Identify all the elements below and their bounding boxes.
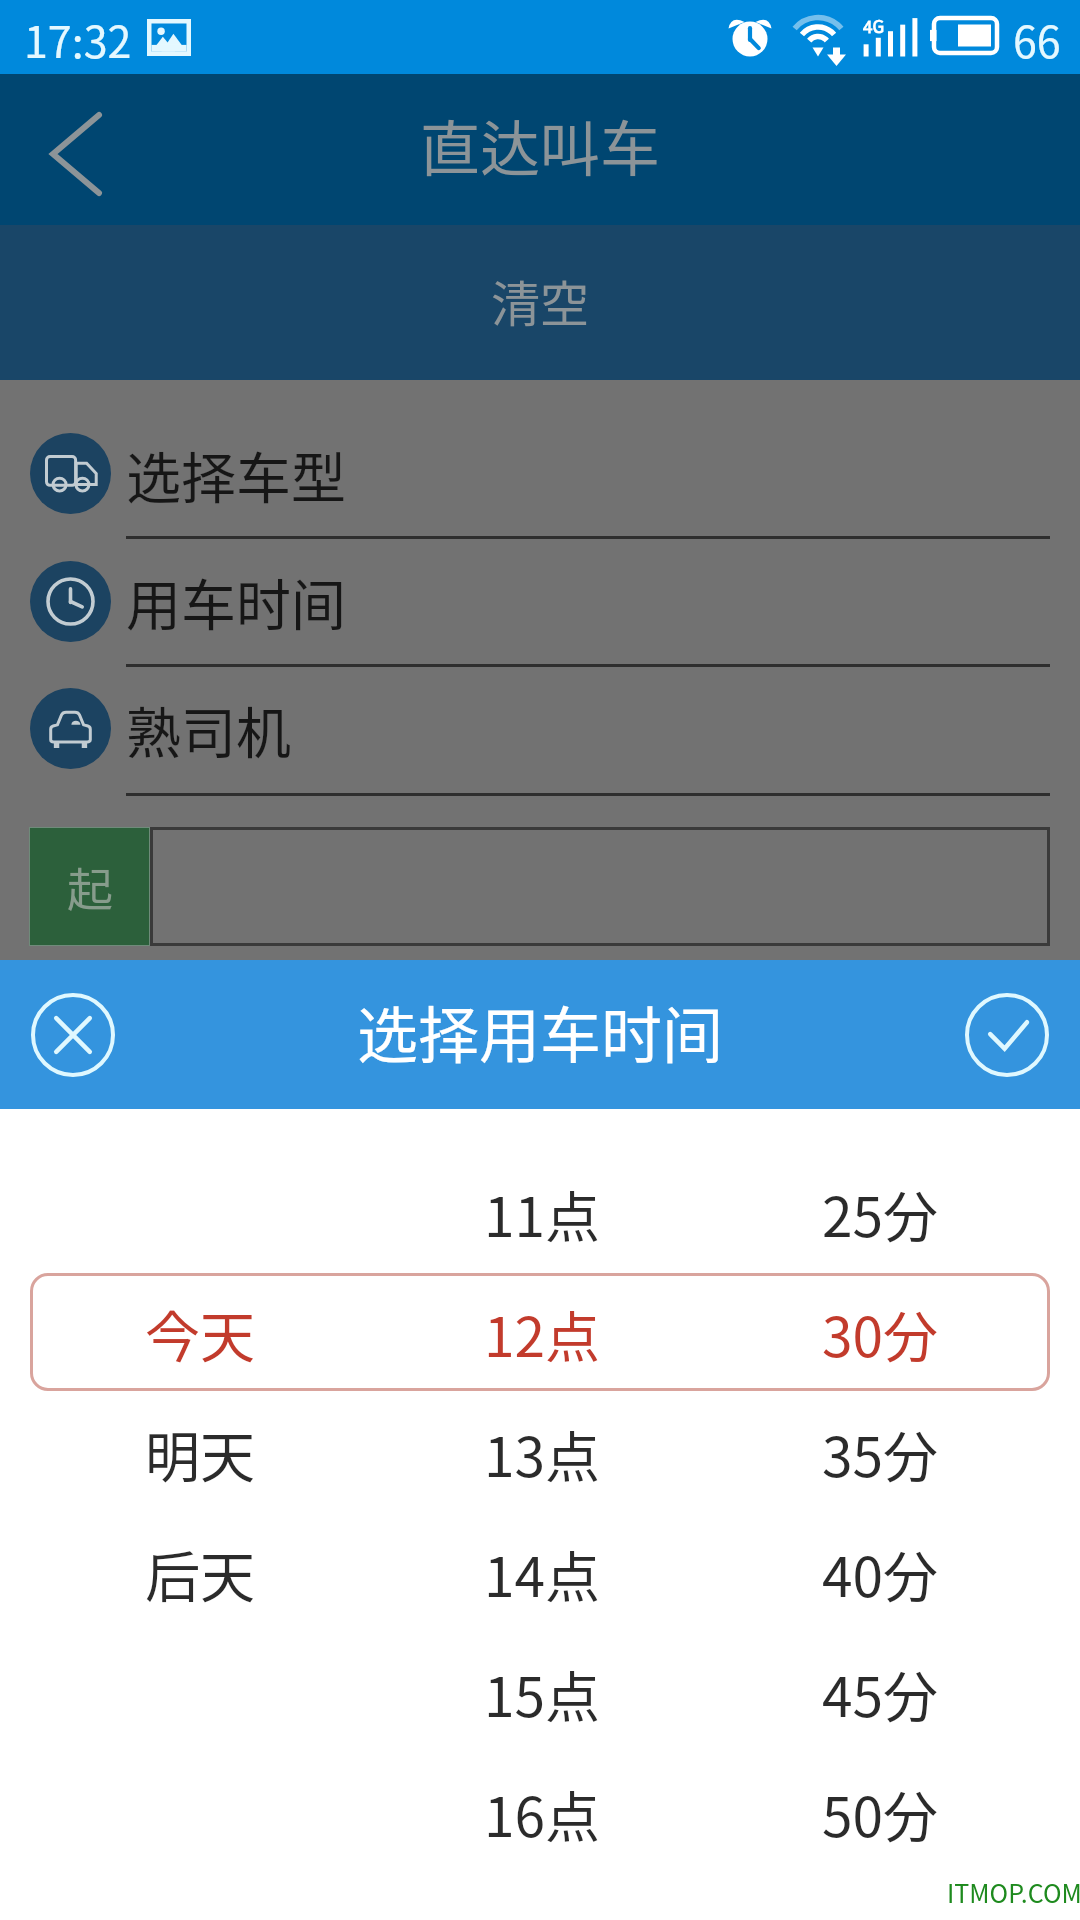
staticText: 起 (67, 853, 113, 920)
staticText: 11点 (484, 1173, 601, 1253)
button[interactable]: 45分 (750, 1633, 1010, 1753)
staticText: 直达叫车 (420, 101, 660, 188)
staticText: 16点 (484, 1773, 601, 1853)
staticText: 明天 (145, 1413, 256, 1493)
button[interactable]: 14点 (412, 1513, 672, 1633)
staticText: 清空 (491, 265, 590, 336)
button[interactable]: 16点 (412, 1753, 672, 1873)
staticText: 66 (1013, 8, 1061, 70)
button[interactable]: Confirm (965, 993, 1049, 1077)
staticText: 13点 (484, 1413, 601, 1493)
button[interactable]: 明天 (70, 1393, 330, 1513)
staticText: 4G (863, 13, 885, 38)
staticText: 35分 (822, 1413, 939, 1493)
staticText: 17:32 (24, 8, 132, 70)
button[interactable]: 起 (29, 827, 1050, 946)
staticText: 45分 (822, 1653, 939, 1733)
button[interactable]: 12点 (412, 1273, 672, 1393)
button[interactable]: 后天 (70, 1513, 330, 1633)
button[interactable]: 35分 (750, 1393, 1010, 1513)
staticText: 12点 (484, 1293, 601, 1373)
button[interactable]: 选择车型 (0, 380, 1080, 537)
staticText: 25分 (822, 1173, 939, 1253)
staticText: 30分 (822, 1293, 939, 1373)
button[interactable]: Cancel (31, 993, 115, 1077)
button[interactable]: 15点 (412, 1633, 672, 1753)
button[interactable]: 清空 (457, 249, 624, 352)
button[interactable]: 熟司机 (0, 665, 1080, 794)
staticText: 后天 (145, 1533, 256, 1613)
button[interactable]: 用车时间 (0, 537, 1080, 665)
button[interactable]: 40分 (750, 1513, 1010, 1633)
staticText: 用车时间 (126, 561, 347, 641)
button[interactable]: 11点 (412, 1153, 672, 1273)
staticText: ITMOP.COM (947, 1874, 1080, 1910)
staticText: 40分 (822, 1533, 939, 1613)
staticText: 熟司机 (126, 689, 292, 769)
button[interactable]: 30分 (750, 1273, 1010, 1393)
staticText: 选择车型 (126, 434, 347, 514)
button[interactable]: 50分 (750, 1753, 1010, 1873)
button[interactable]: 25分 (750, 1153, 1010, 1273)
staticText: 今天 (145, 1293, 256, 1373)
button[interactable]: 今天 (70, 1273, 330, 1393)
button[interactable]: 13点 (412, 1393, 672, 1513)
staticText: 50分 (822, 1773, 939, 1853)
staticText: 选择用车时间 (357, 987, 724, 1075)
staticText: 15点 (484, 1653, 601, 1733)
button[interactable]: Back (0, 74, 130, 225)
staticText: 14点 (484, 1533, 601, 1613)
